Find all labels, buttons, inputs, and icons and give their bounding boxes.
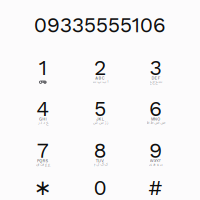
staticText: ص ض ط ظ bbox=[146, 119, 165, 127]
staticText: TUV bbox=[96, 158, 104, 163]
staticText: 5 bbox=[94, 96, 106, 121]
button[interactable]: 8 bbox=[74, 135, 126, 175]
button[interactable]: 5 bbox=[74, 94, 126, 134]
staticText: 0 bbox=[93, 175, 106, 200]
staticText: ا ب پ ت bbox=[92, 78, 108, 86]
staticText: ن و ه ی bbox=[149, 160, 163, 168]
staticText: ز ژ س ش bbox=[92, 119, 107, 127]
staticText: MNO bbox=[151, 117, 160, 121]
button[interactable]: 4 bbox=[17, 94, 69, 134]
button[interactable]: 09335555106 bbox=[15, 10, 185, 40]
staticText: GHI bbox=[39, 117, 46, 121]
button[interactable]: 7 bbox=[17, 135, 69, 175]
staticText: ث ج چ ح bbox=[149, 78, 162, 86]
button[interactable]: 9 bbox=[130, 135, 182, 175]
staticText: WXYZ bbox=[150, 158, 161, 163]
button[interactable]: 1 bbox=[17, 53, 69, 93]
staticText: PQRS bbox=[37, 158, 48, 163]
staticText: 8 bbox=[93, 138, 106, 163]
staticText: ∗ bbox=[34, 175, 52, 200]
staticText: # bbox=[149, 175, 163, 200]
button[interactable]: 6 bbox=[130, 94, 182, 134]
staticText: ک گ ل م bbox=[93, 160, 107, 168]
staticText: ABC bbox=[95, 76, 105, 81]
staticText: 3 bbox=[150, 55, 162, 80]
staticText: 09335555106 bbox=[34, 12, 166, 37]
button[interactable]: 2 bbox=[74, 53, 126, 93]
button[interactable]: 3 bbox=[130, 53, 182, 93]
staticText: 6 bbox=[149, 96, 162, 121]
staticText: DEF bbox=[151, 76, 160, 81]
staticText: 1 bbox=[39, 55, 47, 80]
button[interactable]: ∗ bbox=[17, 173, 69, 200]
staticText: JKL bbox=[96, 117, 104, 121]
staticText: ع غ ف ق bbox=[36, 160, 50, 168]
staticText: خ د ذ ر bbox=[38, 119, 48, 127]
button[interactable]: # bbox=[130, 173, 182, 200]
staticText: 4 bbox=[36, 96, 49, 121]
staticText: 2 bbox=[94, 55, 106, 80]
staticText: 9 bbox=[149, 138, 162, 163]
button[interactable]: 0 bbox=[74, 173, 126, 200]
staticText: 7 bbox=[37, 138, 49, 163]
